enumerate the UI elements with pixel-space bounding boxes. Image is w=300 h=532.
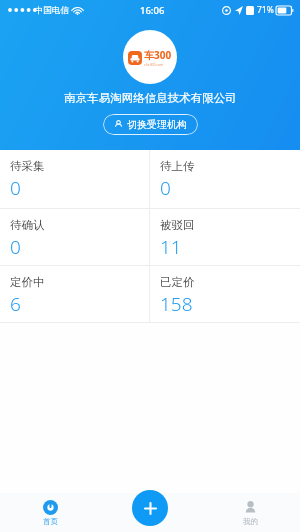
- button[interactable]: 我的: [200, 494, 300, 532]
- staticText: 我的: [243, 517, 258, 526]
- staticText: 6: [10, 291, 21, 317]
- staticText: 已定价: [160, 275, 195, 289]
- button[interactable]: 已定价: [150, 266, 300, 322]
- staticText: che300.com: [144, 62, 164, 67]
- staticText: 11: [160, 234, 182, 260]
- staticText: 71%: [257, 4, 274, 16]
- button[interactable]: Add: [132, 490, 168, 526]
- staticText: 158: [160, 291, 193, 317]
- button[interactable]: 待上传: [150, 150, 300, 208]
- staticText: 待采集: [10, 159, 45, 173]
- staticText: 0: [10, 175, 21, 201]
- staticText: 待确认: [10, 218, 45, 232]
- staticText: 0: [10, 234, 21, 260]
- button[interactable]: 待确认: [0, 209, 149, 265]
- button[interactable]: 切换受理机构: [103, 114, 198, 135]
- staticText: 南京车易淘网络信息技术有限公司: [64, 91, 237, 105]
- staticText: 车300: [144, 48, 172, 62]
- staticText: 首页: [43, 517, 58, 526]
- button[interactable]: 车300: [123, 30, 177, 84]
- staticText: 待上传: [160, 159, 195, 173]
- staticText: 被驳回: [160, 218, 195, 232]
- staticText: 定价中: [10, 275, 45, 289]
- button[interactable]: 首页: [0, 494, 100, 532]
- button[interactable]: 被驳回: [150, 209, 300, 265]
- staticText: 切换受理机构: [127, 118, 187, 131]
- staticText: 16:06: [140, 4, 165, 17]
- button[interactable]: 定价中: [0, 266, 149, 322]
- staticText: 中国电信: [35, 5, 69, 16]
- button[interactable]: 待采集: [0, 150, 149, 208]
- staticText: 0: [160, 175, 171, 201]
